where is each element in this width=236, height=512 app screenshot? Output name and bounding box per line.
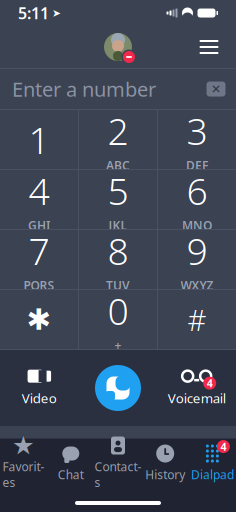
staticText: Video — [22, 389, 57, 407]
staticText: 0 — [107, 286, 128, 335]
staticText: Dialpad — [191, 466, 234, 482]
staticText: 7 — [28, 226, 49, 275]
button[interactable]: ✱ — [0, 290, 78, 349]
staticText: # — [187, 300, 206, 339]
button[interactable]: ★ — [0, 439, 47, 487]
button[interactable]: 4 — [189, 439, 236, 487]
staticText: 1 — [28, 115, 49, 164]
staticText: Favorites — [3, 459, 45, 490]
staticText: 2 — [107, 106, 128, 155]
staticText: 4 — [220, 439, 226, 454]
staticText: ★ — [12, 431, 35, 460]
button[interactable]: History — [142, 439, 189, 487]
button[interactable]: Chat — [47, 439, 94, 487]
button[interactable]: Profile, do not disturb — [98, 27, 138, 67]
button[interactable]: 7 — [0, 230, 78, 289]
staticText: History — [145, 466, 185, 482]
staticText: 4 — [207, 376, 213, 390]
staticText: TUV — [106, 277, 130, 293]
staticText: 4 — [28, 166, 49, 215]
staticText: JKL — [108, 217, 127, 233]
button[interactable]: 8 — [79, 230, 157, 289]
staticText: ✱ — [26, 303, 51, 336]
staticText: 6 — [186, 166, 207, 215]
button[interactable]: 2 — [79, 110, 157, 169]
button[interactable]: 4 — [157, 353, 236, 423]
staticText: 8 — [107, 226, 128, 275]
button[interactable]: 6 — [158, 170, 236, 229]
staticText: PQRS — [23, 277, 54, 293]
staticText: ✕ — [211, 82, 221, 96]
button[interactable]: 1 — [0, 110, 78, 169]
button[interactable]: Menu — [190, 28, 228, 66]
staticText: GHI — [28, 217, 50, 233]
button[interactable]: 3 — [158, 110, 236, 169]
staticText: WXYZ — [180, 277, 213, 293]
staticText: MNO — [182, 217, 212, 233]
staticText: + — [114, 337, 121, 353]
staticText: Contacts — [94, 459, 141, 490]
button[interactable]: 9 — [158, 230, 236, 289]
staticText: 3 — [186, 106, 207, 155]
staticText: 9 — [186, 226, 207, 275]
staticText: Enter a number — [12, 76, 156, 102]
button[interactable]: Delete — [201, 74, 231, 104]
button[interactable]: 4 — [0, 170, 78, 229]
button[interactable]: Video — [0, 353, 79, 423]
staticText: ➤ — [52, 7, 61, 19]
button[interactable]: 0 — [79, 290, 157, 349]
button[interactable]: Contacts — [94, 439, 142, 487]
staticText: Chat — [58, 466, 84, 482]
staticText: 5:11 — [18, 2, 49, 24]
staticText: ABC — [106, 157, 130, 173]
button[interactable]: # — [158, 290, 236, 349]
staticText: Voicemail — [168, 389, 226, 407]
button[interactable]: 5 — [79, 170, 157, 229]
button[interactable]: Call — [79, 353, 157, 423]
staticText: DEF — [186, 157, 208, 173]
staticText: 5 — [107, 166, 128, 215]
